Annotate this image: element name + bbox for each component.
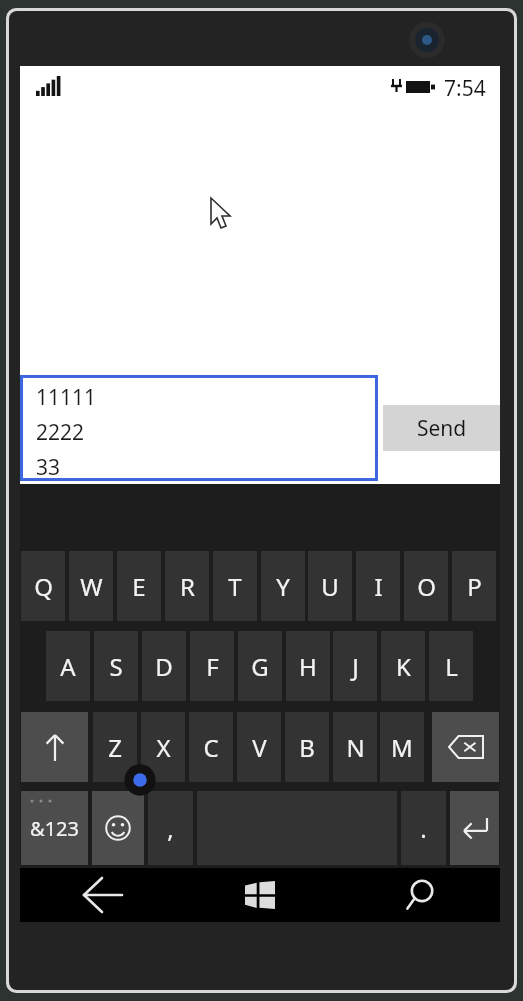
staticText: 11111	[36, 383, 97, 412]
button[interactable]: L	[429, 631, 473, 701]
button[interactable]: I	[356, 551, 400, 621]
staticText: 33	[36, 453, 61, 481]
staticText: 2222	[36, 418, 85, 447]
staticText: T	[228, 570, 242, 603]
button[interactable]: Q	[21, 551, 65, 621]
staticText: D	[155, 650, 173, 683]
staticText: J	[352, 650, 359, 683]
staticText: M	[391, 731, 413, 764]
button[interactable]: W	[69, 551, 113, 621]
staticText: &123	[30, 815, 79, 842]
staticText: O	[417, 570, 436, 603]
button[interactable]: C	[189, 712, 233, 782]
button[interactable]: Emoji	[92, 791, 144, 865]
staticText: ,	[167, 812, 174, 845]
button[interactable]: K	[381, 631, 425, 701]
button[interactable]: T	[213, 551, 257, 621]
staticText: Q	[34, 570, 53, 603]
button[interactable]: B	[285, 712, 329, 782]
button[interactable]: ,	[148, 791, 193, 865]
button[interactable]: 11111	[20, 375, 378, 481]
button[interactable]: Enter	[450, 791, 499, 865]
staticText: I	[374, 570, 383, 603]
button[interactable]: R	[165, 551, 209, 621]
button[interactable]: A	[46, 631, 90, 701]
staticText: Z	[108, 731, 122, 764]
button[interactable]: Search	[340, 868, 500, 922]
button[interactable]: N	[333, 712, 377, 782]
staticText: G	[251, 650, 269, 683]
staticText: A	[60, 650, 76, 683]
button[interactable]: Y	[261, 551, 305, 621]
staticText: N	[346, 731, 365, 764]
staticText: K	[396, 650, 411, 683]
button[interactable]: G	[238, 631, 282, 701]
staticText: R	[180, 570, 195, 603]
staticText: B	[299, 731, 315, 764]
button[interactable]: S	[94, 631, 138, 701]
staticText: E	[132, 570, 146, 603]
staticText: Send	[417, 414, 467, 443]
staticText: U	[321, 570, 339, 603]
button[interactable]: U	[308, 551, 352, 621]
button[interactable]: F	[190, 631, 234, 701]
button[interactable]: J	[333, 631, 377, 701]
button[interactable]: D	[142, 631, 186, 701]
staticText: Y	[276, 570, 290, 603]
staticText: 7:54	[444, 74, 486, 103]
staticText: .	[420, 812, 427, 845]
button[interactable]: M	[380, 712, 424, 782]
staticText: C	[203, 731, 219, 764]
button[interactable]: Home	[180, 868, 340, 922]
button[interactable]: H	[286, 631, 330, 701]
button[interactable]: P	[452, 551, 496, 621]
button[interactable]: Z	[93, 712, 137, 782]
button[interactable]: .	[401, 791, 446, 865]
staticText: P	[467, 570, 482, 603]
button[interactable]: X	[141, 712, 185, 782]
button[interactable]: Shift	[21, 712, 88, 782]
button[interactable]: Backspace	[432, 712, 499, 782]
button[interactable]: Back	[20, 868, 180, 922]
staticText: X	[156, 731, 171, 764]
staticText: S	[109, 650, 123, 683]
button[interactable]: E	[117, 551, 161, 621]
button[interactable]: V	[237, 712, 281, 782]
staticText: W	[80, 570, 103, 603]
staticText: L	[445, 650, 458, 683]
staticText: V	[252, 731, 267, 764]
button[interactable]: Send	[383, 405, 500, 451]
button[interactable]: &123	[21, 791, 88, 865]
button[interactable]: O	[404, 551, 448, 621]
staticText: H	[299, 650, 317, 683]
staticText: F	[206, 650, 219, 683]
